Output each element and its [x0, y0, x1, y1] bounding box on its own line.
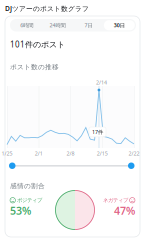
staticText: 17件 [92, 128, 103, 135]
staticText: 53% [10, 204, 31, 218]
staticText: 2/22 [128, 150, 139, 157]
staticText: 6時間 [20, 22, 33, 29]
staticText: 感情の割合 [10, 182, 45, 190]
button[interactable]: Range end [128, 162, 134, 169]
staticText: ポスト数の推移 [10, 63, 59, 71]
staticText: 2/1 [35, 150, 43, 157]
staticText: 101件のポスト [10, 39, 65, 50]
staticText: 2/14 [96, 79, 107, 86]
staticText: 30日 [114, 22, 125, 29]
staticText: 2/15 [97, 150, 108, 157]
button[interactable]: 6時間 [11, 20, 42, 30]
staticText: 24時間 [50, 22, 66, 29]
button[interactable]: 7日 [73, 20, 104, 30]
staticText: ポジティブ [17, 197, 42, 204]
staticText: 2/8 [66, 150, 74, 157]
button[interactable]: Range start [9, 162, 15, 169]
staticText: 1/25 [1, 150, 12, 157]
button[interactable]: 30日 [104, 20, 135, 30]
staticText: 7日 [84, 22, 92, 29]
button[interactable]: 24時間 [42, 20, 73, 30]
staticText: DJツアーのポスト数グラフ [5, 4, 89, 13]
staticText: 47% [114, 204, 135, 218]
staticText: ネガティブ [103, 197, 128, 204]
